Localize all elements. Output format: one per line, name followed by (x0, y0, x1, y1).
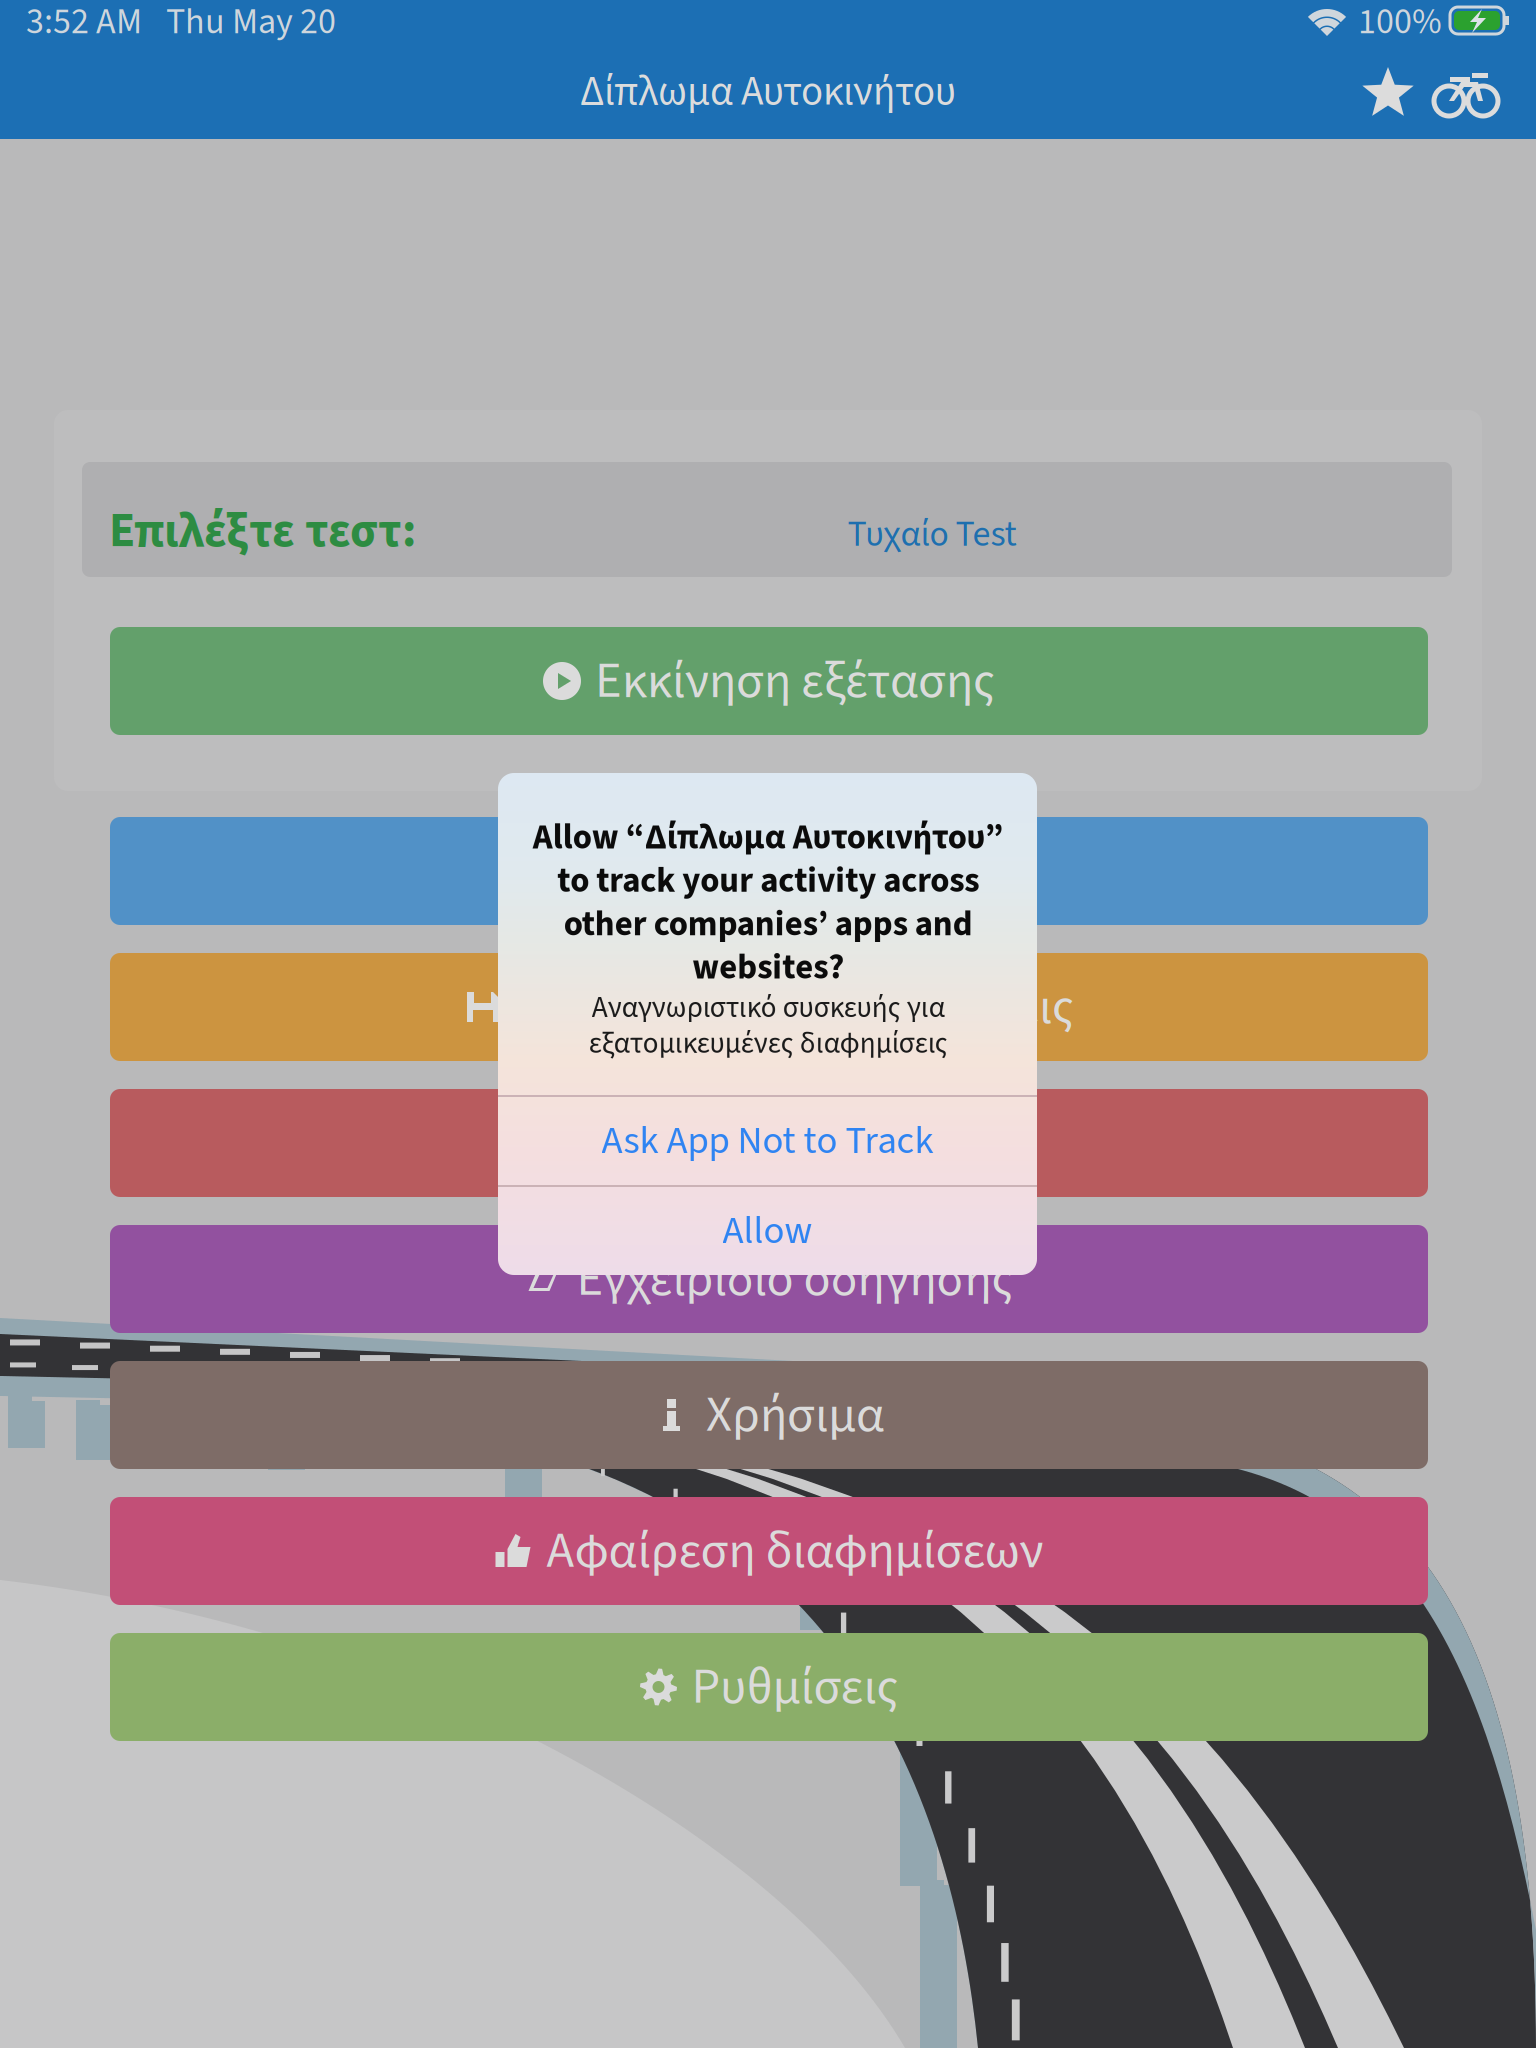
button[interactable]: Ρυθμίσεις (110, 1633, 1428, 1741)
button[interactable]: Σήματα (110, 1089, 1428, 1197)
staticText: 100% (1358, 0, 1442, 48)
button[interactable]: Χρήσιμα (110, 1361, 1428, 1469)
button[interactable]: Αποθηκευμένες ερωτήσεις (110, 953, 1428, 1061)
button[interactable]: Επανάληψη λαθών (110, 817, 1428, 925)
staticText: Επιλέξτε τεστ: (109, 497, 416, 565)
staticText: Δίπλωμα Αυτοκινήτου (580, 63, 956, 121)
staticText: Αφαίρεση διαφημίσεων (546, 1515, 1043, 1587)
staticText: Σήματα (714, 1107, 875, 1179)
staticText: Εκκίνηση εξέτασης (595, 645, 995, 717)
staticText: Αποθηκευμένες ερωτήσεις (516, 971, 1074, 1043)
button[interactable]: Εγχειρίδιο οδήγησης (110, 1225, 1428, 1333)
staticText: Ask App Not to Track (601, 1113, 933, 1169)
button[interactable]: Εκκίνηση εξέτασης (110, 627, 1428, 735)
staticText: Allow “Δίπλωμα Αυτοκινήτου” to track you… (532, 813, 1003, 992)
staticText: Χρήσιμα (706, 1379, 884, 1451)
staticText: Ρυθμίσεις (691, 1651, 898, 1723)
button[interactable]: Motorcycle licence (1432, 66, 1500, 122)
button[interactable]: Τυχαίο Test (762, 487, 1102, 582)
staticText: Allow (722, 1203, 812, 1259)
button[interactable]: Favourites (1360, 64, 1416, 124)
staticText: Επανάληψη λαθών (596, 835, 993, 907)
button[interactable]: Allow (498, 1187, 1037, 1275)
button[interactable]: Αφαίρεση διαφημίσεων (110, 1497, 1428, 1605)
staticText: Thu May 20 (166, 0, 336, 48)
staticText: 3:52 AM (26, 0, 142, 48)
staticText: Εγχειρίδιο οδήγησης (576, 1243, 1013, 1315)
staticText: Τυχαίο Test (847, 509, 1016, 560)
button[interactable]: Ask App Not to Track (498, 1097, 1037, 1185)
staticText: Αναγνωριστικό συσκευής για εξατομικευμέν… (588, 987, 947, 1064)
